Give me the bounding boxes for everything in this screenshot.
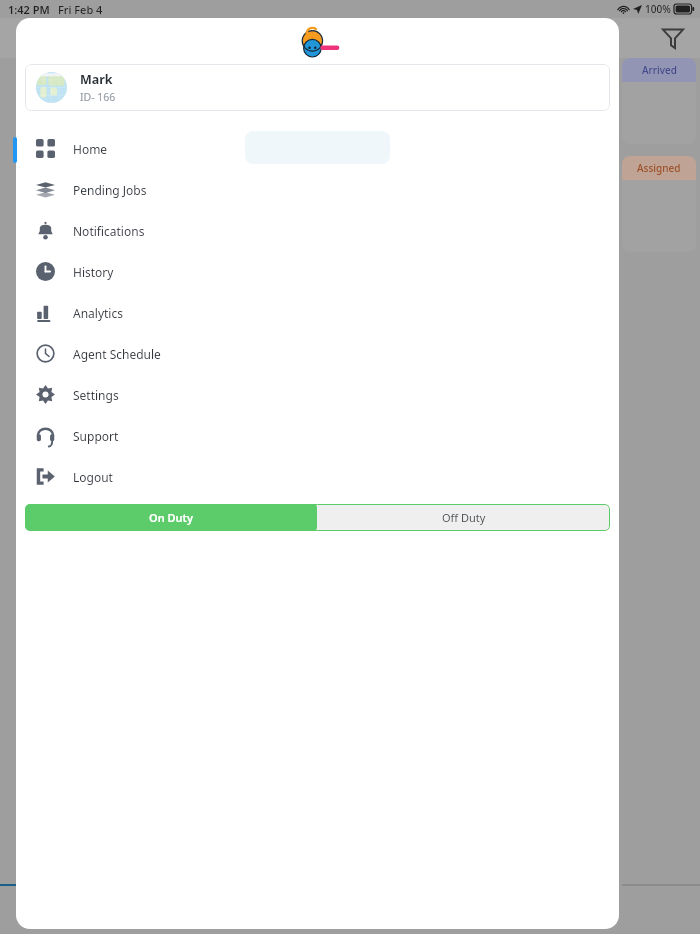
staticText: 1:42 PM	[8, 2, 50, 17]
button[interactable]: Notifications	[16, 210, 619, 251]
staticText: 100%	[645, 2, 671, 16]
button[interactable]: Pending Jobs	[16, 169, 619, 210]
button[interactable]: History	[16, 251, 619, 292]
button[interactable]: Home	[16, 128, 619, 169]
staticText: History	[73, 264, 114, 280]
button[interactable]: Analytics	[16, 292, 619, 333]
button[interactable]: On Duty	[25, 504, 317, 531]
button[interactable]: Off Duty	[317, 504, 610, 531]
staticText: Notifications	[73, 223, 145, 239]
staticText: Agent Schedule	[73, 346, 161, 362]
staticText: Arrived	[642, 63, 677, 77]
staticText: Off Duty	[442, 510, 486, 525]
staticText: ID- 166	[80, 90, 116, 104]
staticText: Settings	[73, 387, 119, 403]
staticText: Logout	[73, 469, 113, 485]
staticText: Pending Jobs	[73, 182, 147, 198]
button[interactable]: Settings	[16, 374, 619, 415]
button[interactable]: Filter	[658, 23, 688, 53]
button[interactable]: Arrived	[622, 58, 696, 144]
staticText: Mark	[80, 71, 113, 88]
button[interactable]: Mark	[25, 64, 610, 111]
staticText: Assigned	[637, 161, 681, 175]
staticText: Fri Feb 4	[58, 2, 103, 17]
button[interactable]: Support	[16, 415, 619, 456]
button[interactable]: Logout	[16, 456, 619, 497]
staticText: On Duty	[149, 510, 194, 525]
staticText: Home	[73, 141, 108, 157]
staticText: Analytics	[73, 305, 123, 321]
button[interactable]: Assigned	[622, 156, 696, 252]
button[interactable]: Agent Schedule	[16, 333, 619, 374]
staticText: Support	[73, 428, 119, 444]
